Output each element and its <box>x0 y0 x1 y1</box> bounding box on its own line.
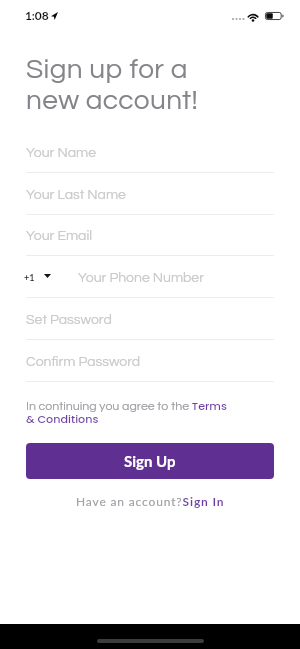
staticText: Your Last Name <box>26 188 126 202</box>
button[interactable]: Your Last Name <box>26 184 274 215</box>
button[interactable]: Your Phone Number <box>78 271 204 285</box>
button[interactable]: Set Password <box>26 309 274 340</box>
staticText: +1 <box>24 272 35 283</box>
button[interactable]: Sign Up <box>26 443 274 479</box>
button[interactable]: Your Email <box>26 225 274 256</box>
staticText: 1:08 <box>25 8 49 22</box>
button[interactable]: Confirm Password <box>26 351 274 382</box>
staticText: Sign up for a new account! <box>26 55 199 115</box>
staticText: In continuing you agree to the Terms & C… <box>26 398 232 426</box>
staticText: Have an account?Sign In <box>76 494 225 508</box>
staticText: Sign Up <box>124 452 176 470</box>
button[interactable]: In continuing you agree to the Terms & C… <box>26 398 232 426</box>
button[interactable]: Your Name <box>26 142 274 173</box>
staticText: Your Name <box>26 146 96 160</box>
staticText: Confirm Password <box>26 355 141 369</box>
button[interactable]: Select country code <box>24 268 56 292</box>
staticText: Your Email <box>26 229 93 243</box>
staticText: Set Password <box>26 313 112 327</box>
button[interactable]: Have an account?Sign In <box>76 494 225 508</box>
